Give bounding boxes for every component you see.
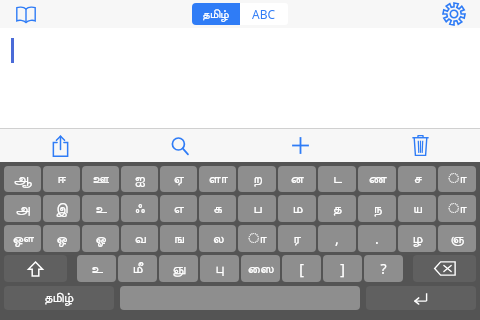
staticText: ளா — [208, 172, 228, 186]
button[interactable]: , — [318, 225, 356, 252]
button[interactable]: [ — [282, 255, 321, 282]
button[interactable]: இ — [43, 195, 80, 222]
staticText: எ — [173, 202, 184, 216]
button[interactable]: ] — [323, 255, 362, 282]
button[interactable]: ம — [278, 195, 316, 222]
button[interactable]: Dictionary — [8, 1, 44, 27]
staticText: பு — [215, 262, 224, 276]
staticText: ந — [373, 202, 382, 216]
button[interactable]: ப — [238, 195, 276, 222]
staticText: ? — [380, 259, 387, 278]
button[interactable]: பு — [200, 255, 239, 282]
button[interactable]: ற — [238, 166, 276, 192]
button[interactable]: ஸை — [241, 255, 280, 282]
button[interactable]: ன — [278, 166, 316, 192]
button[interactable]: உ — [77, 255, 116, 282]
button[interactable]: ளா — [199, 166, 236, 192]
button[interactable]: உ — [82, 195, 119, 222]
button[interactable]: . — [358, 225, 396, 252]
button[interactable]: ர — [278, 225, 316, 252]
staticText: க — [213, 202, 222, 216]
button[interactable]: க — [199, 195, 236, 222]
button[interactable]: மீ — [118, 255, 157, 282]
button[interactable]: ? — [364, 255, 403, 282]
button[interactable]: Backspace — [413, 255, 476, 282]
staticText: . — [375, 229, 379, 248]
staticText: ஸை — [247, 262, 274, 276]
button[interactable]: Add — [240, 129, 360, 162]
button[interactable]: ா — [438, 195, 476, 222]
staticText: ஒ — [56, 232, 67, 246]
staticText: ] — [340, 259, 345, 278]
staticText: மீ — [132, 262, 143, 276]
staticText: தமிழ் — [202, 8, 229, 20]
staticText: ஓ — [95, 232, 106, 246]
staticText: உ — [95, 202, 107, 216]
staticText: ம — [292, 202, 303, 216]
button[interactable]: ஓ — [82, 225, 119, 252]
staticText: ஞு — [172, 262, 186, 276]
button[interactable]: ல — [199, 225, 236, 252]
button[interactable]: எ — [160, 195, 197, 222]
button[interactable]: Share — [0, 129, 120, 162]
staticText: ச — [413, 172, 422, 186]
staticText: ா — [448, 172, 467, 186]
staticText: ங — [174, 232, 184, 246]
button[interactable]: ஈ — [43, 166, 80, 192]
button[interactable]: ந — [358, 195, 396, 222]
staticText: ஞ — [450, 232, 464, 246]
staticText: ன — [290, 172, 304, 186]
staticText: ஐ — [134, 172, 145, 186]
staticText: அ — [15, 202, 30, 216]
staticText: ஔ — [12, 232, 34, 246]
button[interactable]: ஆ — [4, 166, 41, 192]
button[interactable]: ABC — [240, 3, 288, 25]
button[interactable]: Search — [120, 129, 240, 162]
button[interactable]: ங — [160, 225, 197, 252]
staticText: ல — [212, 232, 224, 246]
button[interactable]: தமிழ் — [4, 286, 114, 310]
button[interactable]: ட — [318, 166, 356, 192]
staticText: ப — [253, 202, 262, 216]
button[interactable]: Shift — [4, 255, 67, 282]
staticText: தமிழ் — [44, 292, 74, 305]
button[interactable]: ச — [398, 166, 436, 192]
button[interactable]: ஏ — [160, 166, 197, 192]
staticText: ஏ — [173, 172, 184, 186]
button[interactable]: தமிழ் — [192, 3, 239, 25]
button[interactable]: Delete — [360, 129, 480, 162]
staticText: ஈ — [57, 172, 66, 186]
staticText: ஃ — [134, 202, 145, 216]
staticText: ய — [413, 202, 422, 216]
staticText: , — [335, 229, 339, 248]
button[interactable]: த — [318, 195, 356, 222]
staticText: ABC — [252, 6, 276, 22]
button[interactable]: ா — [238, 225, 276, 252]
staticText: ண — [368, 172, 387, 186]
button[interactable]: ண — [358, 166, 396, 192]
button[interactable]: ஞு — [159, 255, 198, 282]
button[interactable]: ஃ — [121, 195, 158, 222]
staticText: [ — [299, 259, 304, 278]
staticText: வ — [134, 232, 146, 246]
button[interactable]: ஊ — [82, 166, 119, 192]
staticText: ட — [333, 172, 342, 186]
staticText: ற — [253, 172, 262, 186]
button[interactable]: ழ — [398, 225, 436, 252]
button[interactable]: ஔ — [4, 225, 41, 252]
staticText: ர — [293, 232, 301, 246]
button[interactable]: Return — [366, 286, 476, 310]
button[interactable]: ஒ — [43, 225, 80, 252]
staticText: இ — [55, 202, 68, 216]
button[interactable]: Settings — [436, 1, 472, 27]
button[interactable]: ஐ — [121, 166, 158, 192]
staticText: ா — [448, 202, 467, 216]
staticText: ஊ — [92, 172, 109, 186]
button[interactable]: வ — [121, 225, 158, 252]
button[interactable]: ய — [398, 195, 436, 222]
button[interactable]: அ — [4, 195, 41, 222]
staticText: உ — [91, 262, 103, 276]
button[interactable]: ஞ — [438, 225, 476, 252]
button[interactable]: ா — [438, 166, 476, 192]
